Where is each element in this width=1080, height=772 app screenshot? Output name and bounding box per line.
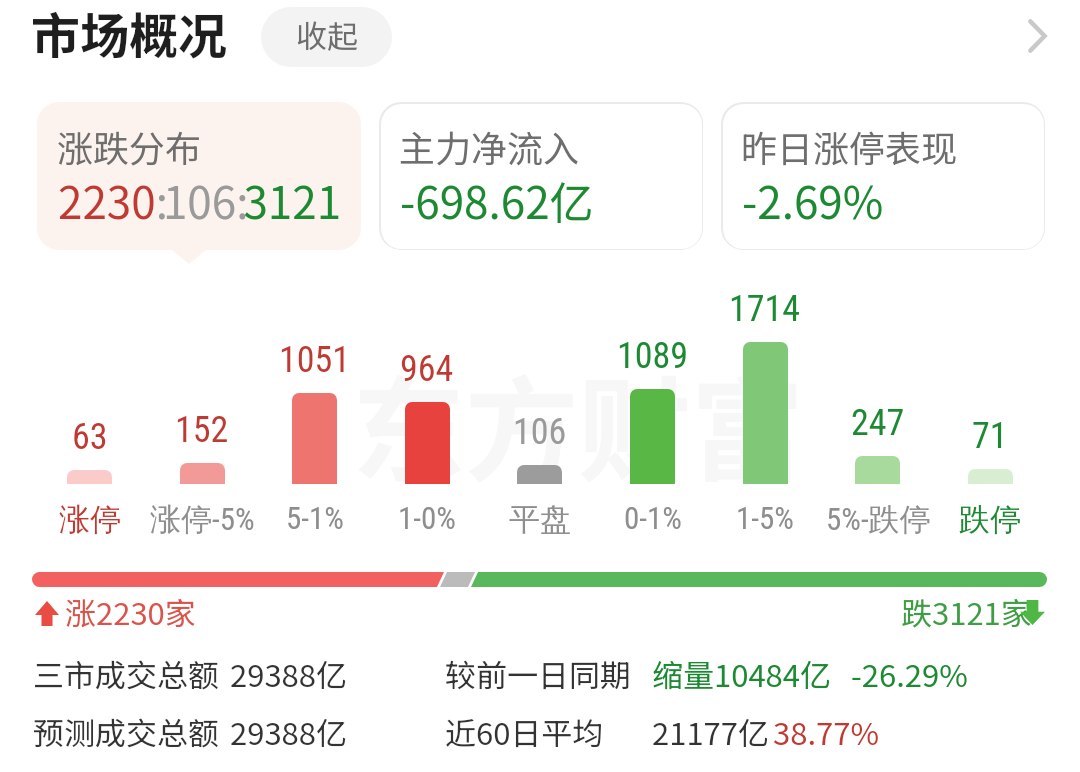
staticText: 38.77%	[773, 709, 879, 754]
staticText: 71	[972, 415, 1008, 457]
staticText: 涨停	[59, 500, 121, 539]
staticText: 0-1%	[624, 500, 682, 536]
staticText: -26.29%	[851, 651, 968, 696]
staticText: 5-1%	[286, 500, 344, 536]
staticText: 29388亿	[230, 709, 348, 754]
staticText: 东方财富	[352, 341, 804, 505]
staticText: 2230:106:3121	[58, 168, 342, 232]
button[interactable]: 查看更多	[1002, 1, 1072, 71]
staticText: 1-5%	[736, 500, 794, 536]
staticText: 涨2230家	[65, 589, 196, 634]
staticText: 106	[513, 411, 567, 453]
staticText: 1714	[729, 288, 801, 330]
staticText: -698.62亿	[400, 168, 594, 232]
staticText: 昨日涨停表现	[741, 120, 958, 172]
staticText: 1-0%	[398, 500, 456, 536]
staticText: 三市成交总额	[33, 651, 219, 696]
button[interactable]: 收起	[261, 7, 392, 67]
staticText: 涨停-5%	[150, 500, 255, 539]
staticText: 1051	[279, 339, 351, 381]
staticText: 预测成交总额	[33, 709, 219, 754]
staticText: 1089	[617, 335, 689, 377]
button[interactable]	[895, 592, 1050, 634]
button[interactable]	[30, 592, 205, 634]
staticText: 21177亿	[652, 709, 770, 754]
staticText: 964	[400, 348, 454, 390]
staticText: 缩量10484亿	[652, 651, 832, 696]
button[interactable]: 主力净流入	[379, 102, 703, 250]
staticText: 平盘	[509, 500, 571, 539]
button[interactable]: 涨跌分布	[37, 102, 361, 250]
staticText: 63	[72, 416, 108, 458]
staticText: 跌3121家	[901, 589, 1032, 634]
staticText: 5%-跌停	[826, 500, 931, 539]
staticText: 29388亿	[230, 651, 348, 696]
staticText: 收起	[296, 12, 358, 57]
staticText: 市场概况	[31, 0, 228, 68]
button[interactable]	[20, 2, 245, 72]
button[interactable]: 昨日涨停表现	[721, 102, 1045, 250]
staticText: -2.69%	[742, 168, 884, 232]
staticText: 247	[851, 402, 905, 444]
staticText: 较前一日同期	[445, 651, 631, 696]
staticText: 主力净流入	[399, 120, 580, 172]
staticText: 涨跌分布	[57, 120, 202, 172]
staticText: 近60日平均	[445, 709, 604, 754]
staticText: 152	[175, 409, 229, 451]
staticText: 跌停	[959, 500, 1021, 539]
